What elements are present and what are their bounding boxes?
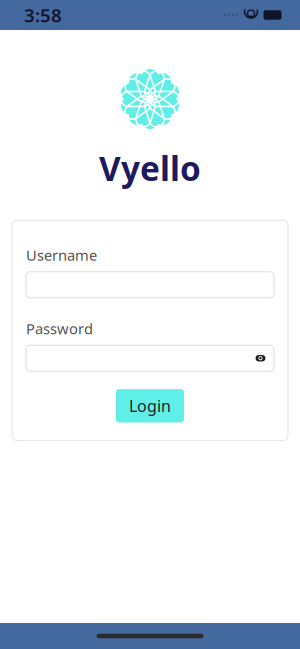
button[interactable]: Show password — [255, 354, 274, 363]
button[interactable]: Login — [116, 389, 184, 422]
staticText: Login — [129, 395, 171, 416]
staticText: Username — [26, 245, 97, 265]
staticText: 3:58 — [24, 3, 62, 27]
staticText: Password — [26, 319, 93, 338]
staticText: Vyello — [99, 146, 201, 190]
